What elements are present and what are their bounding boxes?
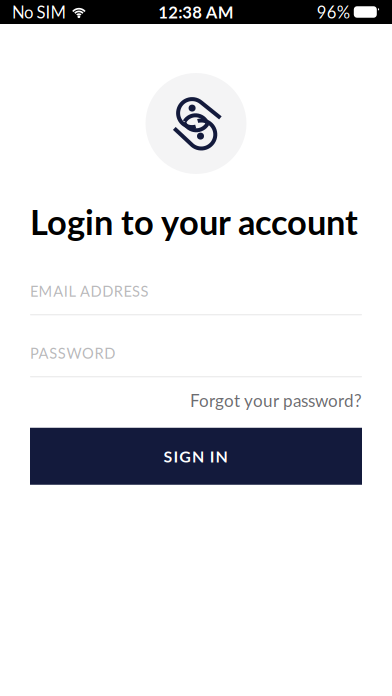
staticText: PASSWORD: [30, 344, 115, 362]
staticText: AM: [206, 2, 234, 22]
button[interactable]: SIGN: [30, 428, 362, 485]
staticText: 12:38: [158, 2, 202, 22]
staticText: Forgot your password?: [190, 390, 362, 411]
staticText: SIM: [36, 2, 65, 22]
staticText: No: [12, 2, 33, 22]
staticText: Login to your account: [30, 201, 358, 242]
staticText: SIGN: [164, 447, 204, 466]
staticText: IN: [210, 447, 228, 466]
button[interactable]: Forgot your password?: [30, 385, 362, 416]
staticText: EMAIL: [30, 282, 76, 300]
staticText: ADDRESS: [80, 282, 149, 300]
staticText: 96%: [317, 2, 350, 22]
